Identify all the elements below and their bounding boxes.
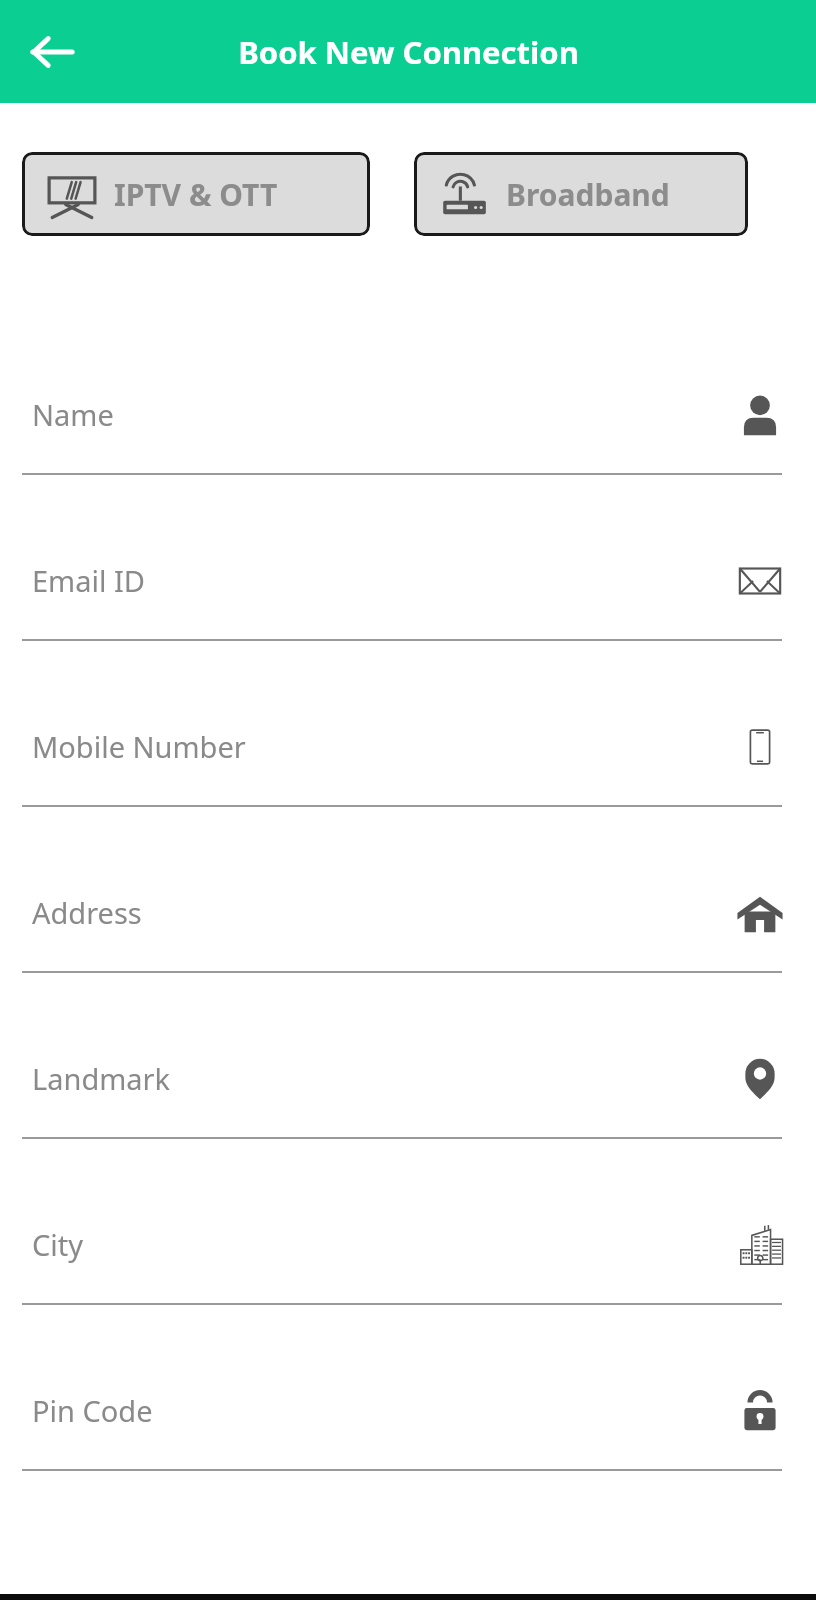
button[interactable]: Back: [16, 16, 88, 88]
button[interactable]: Mobile Number: [0, 688, 816, 854]
button[interactable]: Name: [0, 356, 816, 522]
button[interactable]: Email ID: [0, 522, 816, 688]
staticText: Name: [32, 395, 114, 434]
button[interactable]: IPTV & OTT: [22, 152, 370, 236]
button[interactable]: City: [0, 1186, 816, 1352]
button[interactable]: Broadband: [414, 152, 748, 236]
staticText: Address: [32, 893, 142, 932]
button[interactable]: Landmark: [0, 1020, 816, 1186]
button[interactable]: Address: [0, 854, 816, 1020]
staticText: Landmark: [32, 1059, 171, 1098]
staticText: City: [32, 1225, 84, 1264]
staticText: Pin Code: [32, 1391, 153, 1430]
button[interactable]: Pin Code: [0, 1352, 816, 1518]
staticText: Broadband: [506, 174, 670, 215]
staticText: IPTV & OTT: [114, 174, 278, 215]
staticText: Mobile Number: [32, 727, 246, 766]
staticText: Email ID: [32, 561, 146, 600]
staticText: Book New Connection: [238, 31, 579, 73]
